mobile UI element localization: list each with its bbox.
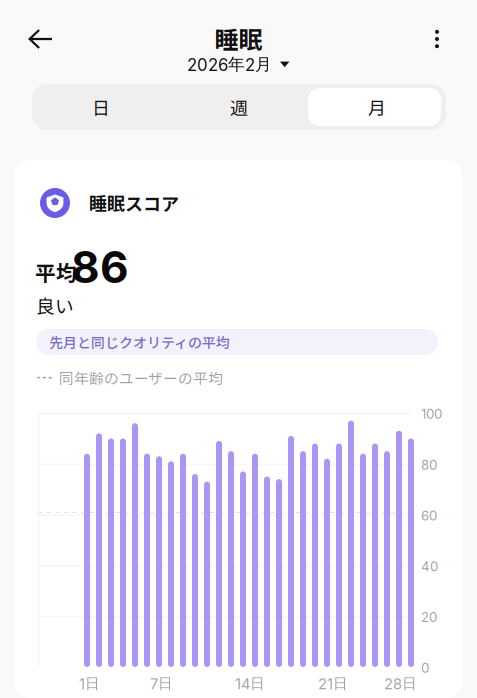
staticText: 0 bbox=[421, 660, 429, 676]
staticText: 20 bbox=[421, 609, 437, 625]
staticText: 日 bbox=[92, 94, 110, 120]
staticText: 100 bbox=[421, 406, 442, 422]
button[interactable]: 月 bbox=[308, 84, 446, 130]
button[interactable]: More options bbox=[415, 17, 459, 61]
staticText: 60 bbox=[421, 507, 437, 524]
button[interactable]: 週 bbox=[170, 84, 308, 130]
button[interactable]: 日 bbox=[32, 84, 170, 130]
staticText: 週 bbox=[230, 94, 248, 120]
staticText: 28日 bbox=[384, 674, 417, 693]
staticText: 7日 bbox=[150, 674, 173, 693]
staticText: 86 bbox=[71, 240, 129, 294]
staticText: 月 bbox=[368, 94, 386, 120]
staticText: 21日 bbox=[318, 674, 348, 693]
staticText: 先月と同じクオリティの平均 bbox=[49, 332, 230, 352]
staticText: 睡眠スコア bbox=[89, 190, 179, 216]
staticText: 良い bbox=[36, 291, 74, 318]
staticText: 14日 bbox=[235, 674, 265, 693]
button[interactable]: Back bbox=[19, 17, 63, 61]
staticText: 80 bbox=[421, 457, 437, 473]
staticText: 40 bbox=[421, 558, 438, 574]
staticText: 同年齢のユーザーの平均 bbox=[59, 367, 223, 388]
staticText: 睡眠 bbox=[214, 21, 262, 56]
staticText: 2026年2月 bbox=[187, 54, 272, 75]
staticText: 平均 bbox=[35, 257, 77, 287]
staticText: 1日 bbox=[79, 674, 100, 693]
